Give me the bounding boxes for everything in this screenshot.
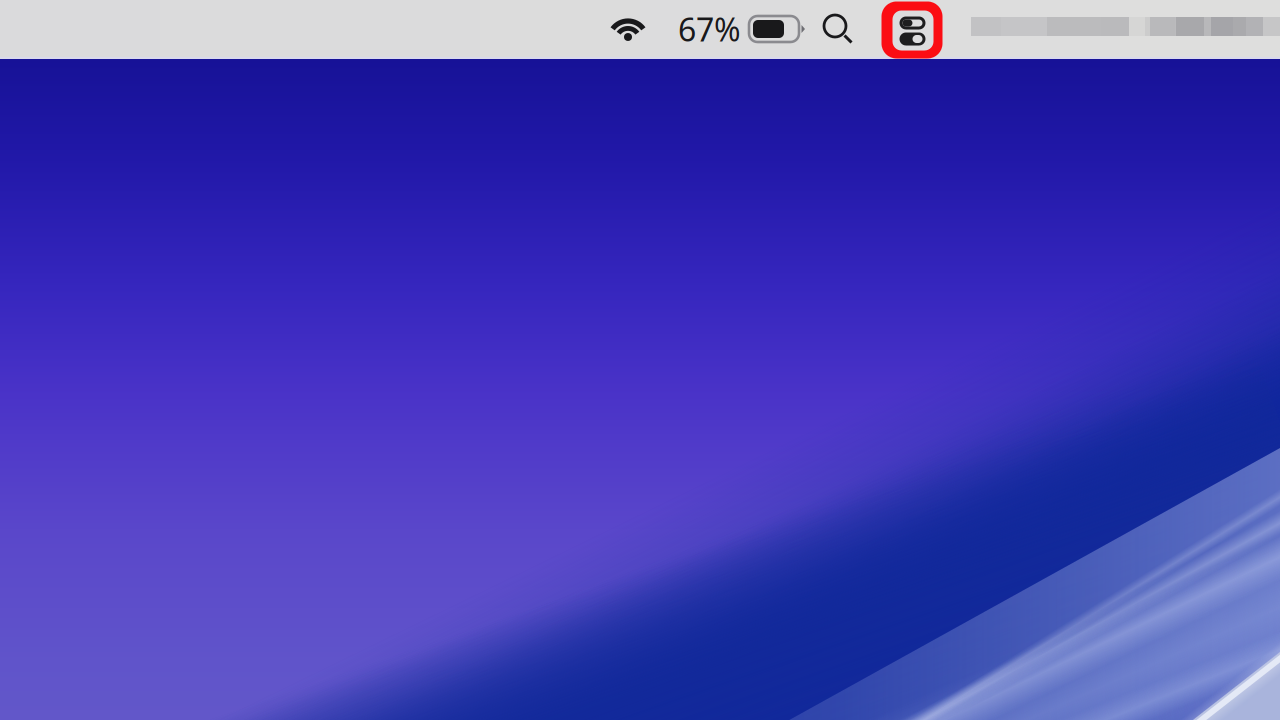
staticText: 67%	[678, 8, 741, 50]
button[interactable]: Wi-Fi	[605, 9, 651, 49]
button[interactable]: Control Center	[881, 0, 943, 58]
button[interactable]: Spotlight Search	[818, 9, 858, 49]
button[interactable]: 67%	[678, 9, 807, 49]
